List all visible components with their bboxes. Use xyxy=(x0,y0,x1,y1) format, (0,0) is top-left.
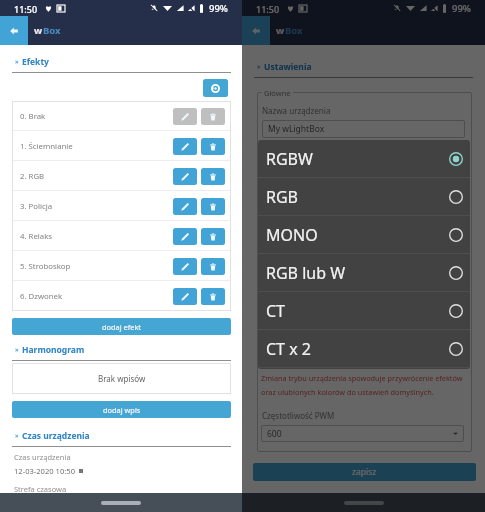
button[interactable]: 1. Ściemnianie xyxy=(12,131,231,161)
staticText: Zmiana trybu urządzenia spowoduje przywr… xyxy=(261,373,463,383)
staticText: 600 xyxy=(267,428,282,440)
button[interactable]: Delete 1. Ściemnianie xyxy=(201,138,225,155)
button[interactable]: Back xyxy=(0,16,28,45)
button[interactable]: PWM frequency xyxy=(261,425,464,442)
staticText: 99% xyxy=(209,2,228,15)
staticText: CT x 2 xyxy=(266,338,311,360)
staticText: » xyxy=(15,431,19,441)
button[interactable]: 4. Relaks xyxy=(12,221,231,251)
button[interactable]: Edit 6. Dzwonek xyxy=(173,288,197,305)
staticText: RGB xyxy=(266,186,299,208)
staticText: 6. Dzwonek xyxy=(20,291,63,302)
staticText: Efekty xyxy=(22,56,49,68)
button[interactable]: Delete 0. Brak xyxy=(201,108,225,125)
staticText: MONO xyxy=(266,224,318,246)
staticText: 99% xyxy=(452,2,471,15)
staticText: CT xyxy=(266,300,286,322)
staticText: My wLightBox xyxy=(268,123,325,135)
button[interactable]: 2. RGB xyxy=(12,161,231,191)
staticText: Harmonogram xyxy=(22,344,85,356)
button[interactable]: Edit 4. Relaks xyxy=(173,228,197,245)
staticText: 11:50 xyxy=(14,3,38,15)
staticText: Główne xyxy=(262,88,293,97)
staticText: » xyxy=(15,57,19,67)
staticText: Częstotliwość PWM xyxy=(262,410,335,421)
button[interactable]: RGBW xyxy=(258,140,470,178)
staticText: oraz ulubionych kolorów do ustawień domy… xyxy=(261,387,434,397)
button[interactable]: 6. Dzwonek xyxy=(12,281,231,311)
staticText: zapisz xyxy=(352,466,377,478)
staticText: Ustawienia xyxy=(264,61,312,73)
staticText: 5. Stroboskop xyxy=(20,261,71,272)
staticText: Box xyxy=(43,24,61,37)
button[interactable]: 5. Stroboskop xyxy=(12,251,231,281)
button[interactable]: Delete 2. RGB xyxy=(201,168,225,185)
staticText: » xyxy=(257,62,261,72)
button[interactable]: zapisz xyxy=(253,463,476,481)
button[interactable]: dodaj efekt xyxy=(12,318,231,335)
button[interactable]: Back xyxy=(242,16,270,45)
button[interactable]: Edit 2. RGB xyxy=(173,168,197,185)
staticText: 12-03-2020 10:50 xyxy=(14,466,76,476)
button[interactable]: CT xyxy=(258,292,470,330)
staticText: dodaj wpis xyxy=(103,405,141,415)
staticText: dodaj efekt xyxy=(102,322,142,332)
button[interactable]: Delete 6. Dzwonek xyxy=(201,288,225,305)
button[interactable]: Edit 1. Ściemnianie xyxy=(173,138,197,155)
button[interactable]: Delete 3. Policja xyxy=(201,198,225,215)
button[interactable]: MONO xyxy=(258,216,470,254)
staticText: 11:50 xyxy=(256,3,280,15)
button[interactable]: Edit 0. Brak xyxy=(173,108,197,125)
staticText: 2. RGB xyxy=(20,171,45,182)
staticText: Box xyxy=(285,24,303,37)
button[interactable]: Refresh xyxy=(203,79,228,97)
button[interactable]: dodaj wpis xyxy=(12,401,231,418)
button[interactable]: CT x 2 xyxy=(258,330,470,368)
staticText: w xyxy=(34,24,43,37)
button[interactable]: My wLightBox xyxy=(262,120,465,138)
staticText: Strefa czasowa xyxy=(14,484,67,494)
staticText: Brak wpisów xyxy=(98,373,146,384)
staticText: 4. Relaks xyxy=(20,231,53,242)
staticText: w xyxy=(276,24,285,37)
staticText: 0. Brak xyxy=(20,111,46,122)
staticText: RGBW xyxy=(266,148,313,170)
staticText: Czas urządzenia xyxy=(22,430,90,442)
staticText: Nazwa urządzenia xyxy=(262,105,331,116)
button[interactable]: Edit 5. Stroboskop xyxy=(173,258,197,275)
staticText: 1. Ściemnianie xyxy=(20,141,73,152)
staticText: » xyxy=(15,345,19,355)
staticText: 3. Policja xyxy=(20,201,53,212)
button[interactable]: Delete 4. Relaks xyxy=(201,228,225,245)
button[interactable]: Delete 5. Stroboskop xyxy=(201,258,225,275)
button[interactable]: RGB lub W xyxy=(258,254,470,292)
button[interactable]: RGB xyxy=(258,178,470,216)
button[interactable]: 0. Brak xyxy=(12,101,231,131)
staticText: RGB lub W xyxy=(266,262,346,284)
button[interactable]: Edit 3. Policja xyxy=(173,198,197,215)
button[interactable]: 3. Policja xyxy=(12,191,231,221)
staticText: Czas urządzenia xyxy=(14,452,71,462)
